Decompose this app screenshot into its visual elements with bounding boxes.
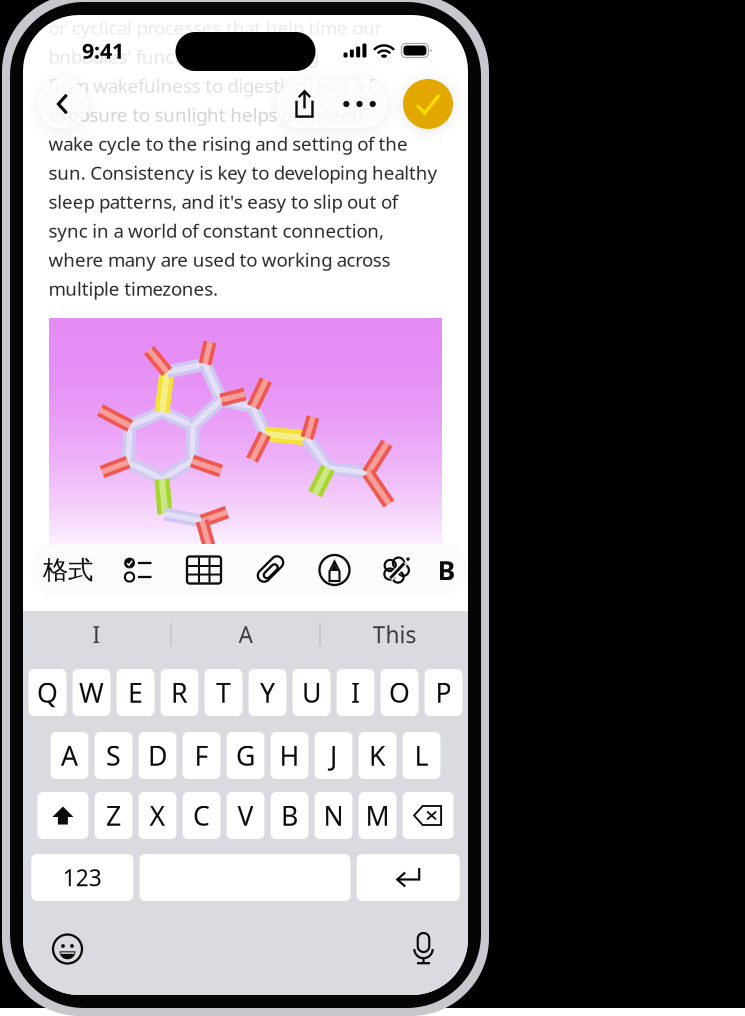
staticText: where many are used to working across — [48, 247, 390, 272]
button[interactable]: U — [293, 669, 330, 716]
button[interactable]: Attach file — [238, 544, 303, 596]
staticText: X — [149, 798, 165, 833]
staticText: 9:41 — [82, 36, 124, 65]
staticText: wake cycle to the rising and setting of … — [48, 131, 408, 156]
button[interactable]: More options — [332, 79, 387, 128]
button[interactable]: X — [139, 792, 176, 839]
staticText: R — [171, 675, 188, 710]
staticText: P — [435, 675, 451, 710]
staticText: sync in a world of constant connection, — [48, 218, 384, 243]
button[interactable]: This — [320, 611, 468, 658]
staticText: bnbodies' functions, everything — [48, 44, 319, 69]
staticText: S — [106, 738, 121, 773]
staticText: 格式 — [43, 554, 93, 585]
staticText: K — [369, 738, 386, 773]
button[interactable]: B — [271, 792, 308, 839]
button[interactable]: Effects — [366, 544, 426, 596]
button[interactable]: L — [403, 732, 440, 779]
staticText: exposure to sunlight helps our sleep- — [48, 102, 368, 127]
button[interactable]: A — [171, 611, 319, 658]
staticText: Z — [106, 798, 121, 833]
button[interactable]: I — [22, 611, 170, 658]
button[interactable]: C — [183, 792, 220, 839]
staticText: H — [279, 738, 299, 773]
staticText: L — [414, 738, 428, 773]
button[interactable]: P — [425, 669, 462, 716]
button[interactable]: O — [381, 669, 418, 716]
button[interactable]: B — [426, 544, 467, 596]
button[interactable]: V — [227, 792, 264, 839]
staticText: B — [437, 552, 455, 588]
staticText: This — [372, 619, 416, 649]
button[interactable]: G — [227, 732, 264, 779]
button[interactable]: D — [139, 732, 176, 779]
staticText: C — [193, 798, 210, 833]
button[interactable]: F — [183, 732, 220, 779]
button[interactable]: Done — [403, 79, 453, 129]
button[interactable]: I — [337, 669, 374, 716]
staticText: A — [61, 738, 78, 773]
staticText: I — [351, 675, 360, 710]
staticText: or cyclical processes that help time our — [48, 15, 383, 40]
button[interactable]: R — [161, 669, 198, 716]
staticText: sleep patterns, and it's easy to slip ou… — [48, 189, 398, 214]
button[interactable]: M — [359, 792, 396, 839]
button[interactable]: Q — [29, 669, 66, 716]
button[interactable]: Delete — [403, 792, 454, 839]
button[interactable]: Markup — [303, 544, 366, 596]
button[interactable]: E — [117, 669, 154, 716]
staticText: N — [323, 798, 343, 833]
button[interactable]: Shift — [37, 792, 88, 839]
button[interactable]: Y — [249, 669, 286, 716]
button[interactable]: H — [271, 732, 308, 779]
staticText: O — [389, 675, 410, 710]
staticText: 123 — [63, 862, 102, 892]
staticText: E — [128, 675, 143, 710]
button[interactable]: 123 — [31, 854, 133, 901]
staticText: Q — [37, 675, 58, 710]
staticText: B — [281, 798, 298, 833]
button[interactable]: Table — [170, 544, 238, 596]
staticText: W — [79, 675, 104, 710]
button[interactable]: T — [205, 669, 242, 716]
button[interactable]: A — [51, 732, 88, 779]
button[interactable]: Checklist — [105, 544, 170, 596]
button[interactable]: Return — [357, 854, 460, 901]
button[interactable]: N — [315, 792, 352, 839]
staticText: M — [365, 798, 389, 833]
button[interactable]: 格式 — [31, 544, 105, 596]
staticText: from wakefulness to digestion. Just a f — [48, 73, 374, 98]
staticText: F — [194, 738, 208, 773]
staticText: Y — [260, 675, 275, 710]
staticText: V — [237, 798, 253, 833]
button[interactable]: W — [73, 669, 110, 716]
button[interactable]: Z — [95, 792, 132, 839]
staticText: J — [330, 738, 337, 773]
staticText: sun. Consistency is key to developing he… — [48, 160, 437, 185]
button[interactable]: J — [315, 732, 352, 779]
button[interactable]: Share — [277, 79, 332, 128]
button[interactable]: S — [95, 732, 132, 779]
staticText: D — [148, 738, 167, 773]
button[interactable]: Emoji — [43, 930, 91, 968]
staticText: U — [302, 675, 321, 710]
staticText: T — [216, 675, 231, 710]
staticText: G — [236, 738, 255, 773]
staticText: I — [92, 619, 100, 649]
button[interactable]: Back — [38, 79, 88, 129]
button[interactable]: K — [359, 732, 396, 779]
staticText: A — [238, 619, 252, 649]
button[interactable]: Dictation — [399, 930, 447, 968]
staticText: multiple timezones. — [48, 276, 218, 301]
